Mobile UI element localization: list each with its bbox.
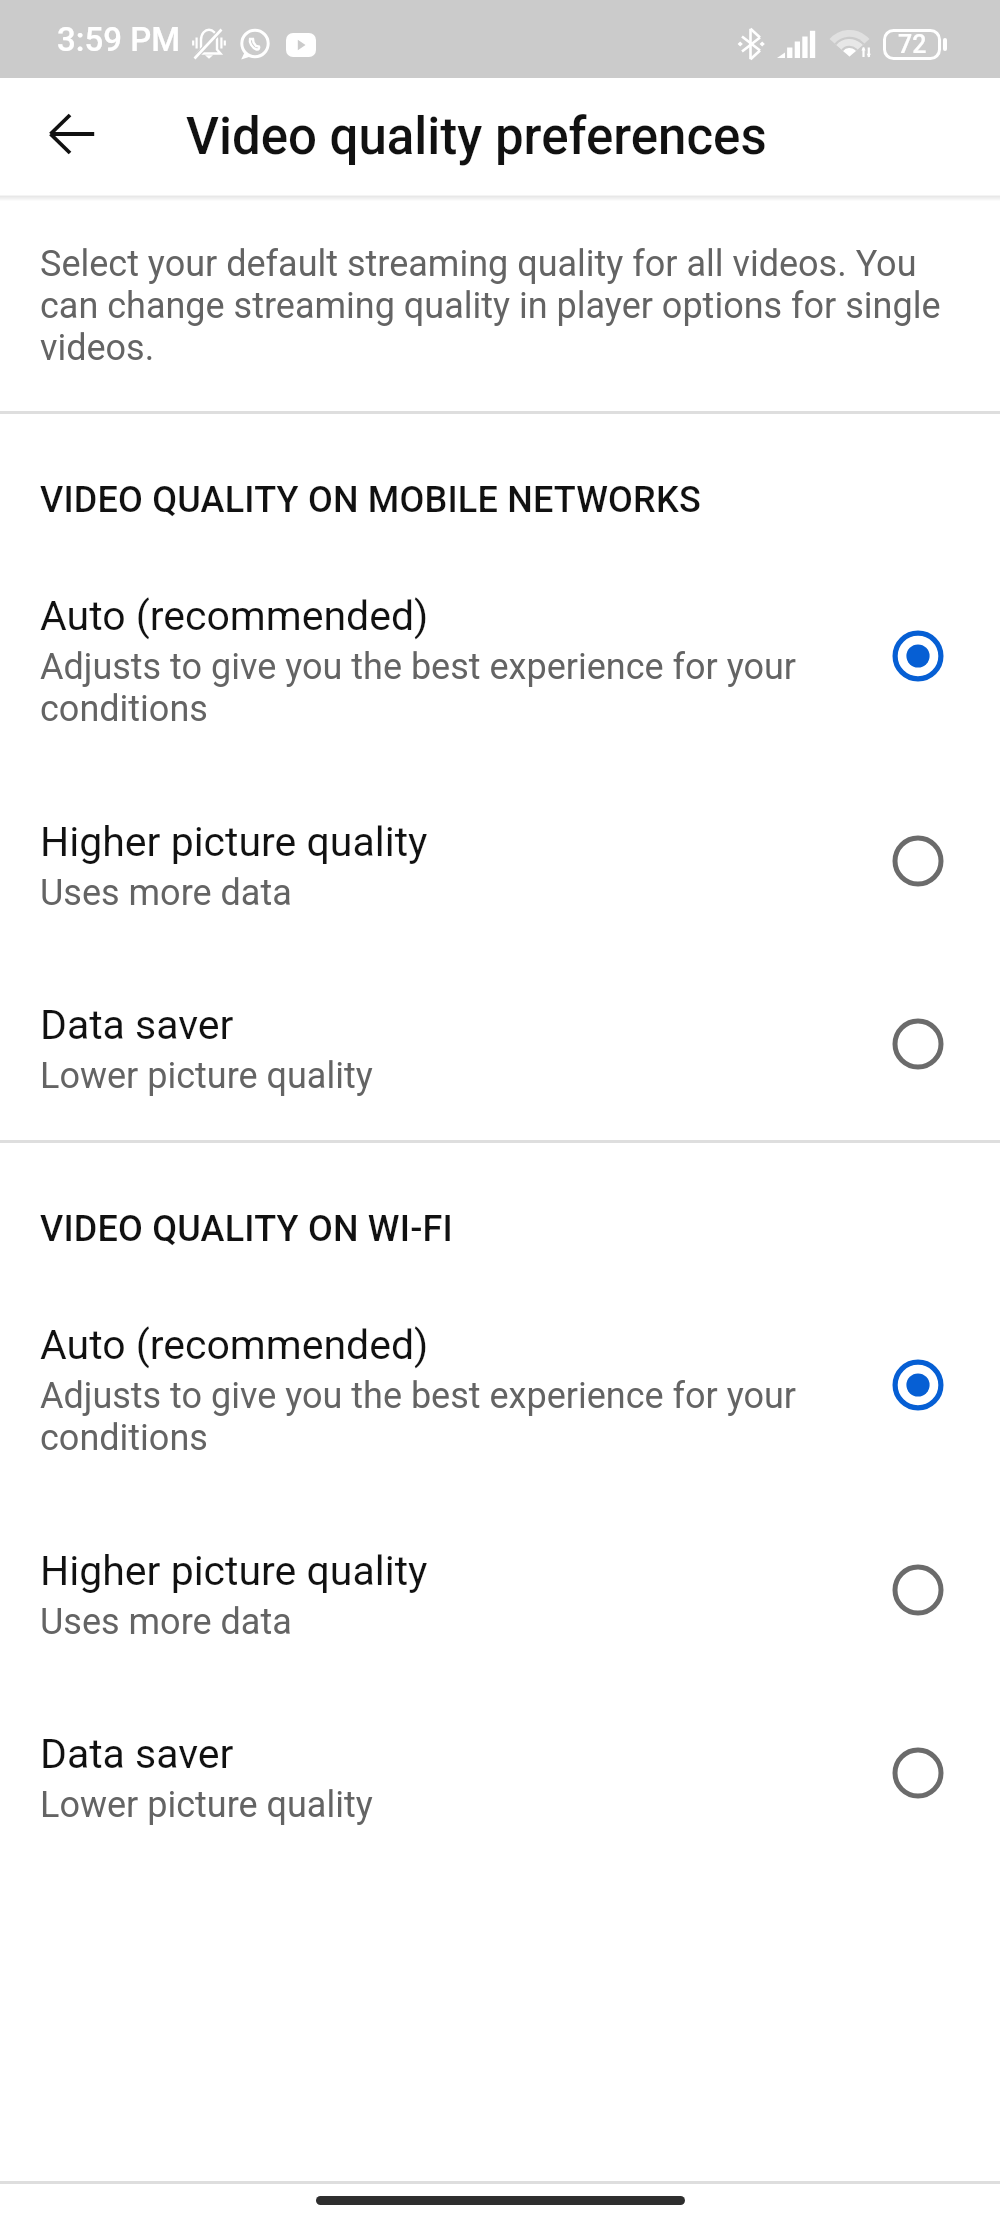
staticText: Auto (recommended) (40, 592, 429, 640)
staticText: VIDEO QUALITY ON WI-FI (40, 1208, 453, 1250)
staticText: Data saver (40, 1730, 234, 1778)
button[interactable]: Data saver (0, 979, 1000, 1119)
staticText: Lower picture quality (40, 1784, 373, 1826)
staticText: Higher picture quality (40, 1547, 428, 1595)
button[interactable]: Higher picture quality (0, 1525, 1000, 1665)
staticText: Higher picture quality (40, 818, 428, 866)
staticText: Adjusts to give you the best experience … (40, 646, 840, 730)
button[interactable]: Auto (recommended) (0, 1299, 1000, 1481)
button[interactable]: Higher picture quality (0, 796, 1000, 936)
button[interactable]: Back (24, 89, 120, 185)
staticText: Uses more data (40, 1601, 292, 1643)
staticText: Uses more data (40, 872, 292, 914)
staticText: Select your default streaming quality fo… (40, 243, 950, 369)
staticText: VIDEO QUALITY ON MOBILE NETWORKS (40, 479, 701, 521)
staticText: Video quality preferences (186, 107, 767, 167)
staticText: Data saver (40, 1001, 234, 1049)
staticText: 72 (898, 30, 927, 59)
staticText: Adjusts to give you the best experience … (40, 1375, 840, 1459)
button[interactable]: Data saver (0, 1708, 1000, 1848)
staticText: Lower picture quality (40, 1055, 373, 1097)
staticText: Auto (recommended) (40, 1321, 429, 1369)
button[interactable]: Auto (recommended) (0, 570, 1000, 752)
staticText: 3:59 PM (57, 20, 181, 59)
